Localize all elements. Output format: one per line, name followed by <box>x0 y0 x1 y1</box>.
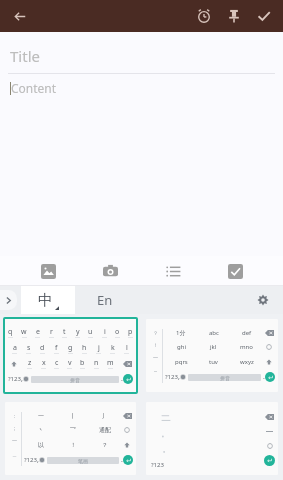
button[interactable]: ： <box>5 402 136 475</box>
staticText: ！ <box>153 342 158 348</box>
staticText: a <box>13 343 17 353</box>
staticText: 中 <box>38 291 53 310</box>
staticText: k <box>111 343 115 353</box>
staticText: ： <box>12 413 17 419</box>
staticText: n <box>94 358 99 368</box>
staticText: 一 <box>38 412 44 420</box>
staticText: u <box>88 327 93 337</box>
staticText: ～ <box>153 368 158 374</box>
staticText: mno <box>240 343 253 351</box>
staticText: d <box>40 343 45 353</box>
staticText: ?123 <box>165 373 178 381</box>
staticText: 1分 <box>176 329 186 337</box>
staticText: y <box>76 327 80 337</box>
button[interactable]: Content <box>10 80 273 96</box>
button[interactable]: ？ <box>146 319 278 392</box>
staticText: , <box>178 372 180 382</box>
button[interactable]: Checklist <box>221 257 249 285</box>
staticText: l <box>126 343 128 353</box>
staticText: Content <box>11 80 57 96</box>
staticText: ?123 <box>8 375 21 383</box>
button[interactable]: Expand <box>0 290 17 310</box>
staticText: — <box>153 354 159 361</box>
staticText: ?123 <box>24 456 37 464</box>
button[interactable]: Bulleted list <box>159 257 187 285</box>
staticText: ？ <box>102 441 108 449</box>
staticText: En <box>97 291 113 309</box>
staticText: 通配 <box>99 426 111 434</box>
staticText: tuv <box>209 358 218 366</box>
staticText: def <box>242 329 252 337</box>
staticText: 丿 <box>102 412 108 420</box>
staticText: b <box>80 358 85 368</box>
button[interactable]: Keyboard settings <box>251 288 275 312</box>
staticText: 拼音 <box>220 375 230 381</box>
staticText: Title <box>10 46 40 66</box>
staticText: q <box>8 327 13 337</box>
staticText: wxyz <box>240 358 254 366</box>
staticText: , <box>21 374 23 384</box>
staticText: e <box>36 327 40 337</box>
staticText: z <box>28 358 32 368</box>
button[interactable]: Back <box>4 0 36 32</box>
staticText: 笔画 <box>78 458 88 464</box>
staticText: m <box>107 358 114 368</box>
staticText: 拼音 <box>70 377 80 383</box>
button[interactable]: Take photo <box>96 257 124 285</box>
button[interactable]: Reminder <box>189 1 219 31</box>
staticText: abc <box>209 329 219 337</box>
staticText: ghi <box>177 343 186 351</box>
staticText: o <box>115 327 120 337</box>
staticText: j <box>98 343 100 353</box>
staticText: 丶 <box>38 426 44 434</box>
staticText: t <box>63 327 66 337</box>
staticText: ； <box>12 425 17 431</box>
staticText: . <box>121 455 123 465</box>
staticText: v <box>68 358 72 368</box>
button[interactable]: Done <box>249 1 279 31</box>
staticText: 以 <box>38 441 44 449</box>
staticText: pqrs <box>175 358 188 366</box>
staticText: f <box>55 343 58 353</box>
staticText: p <box>128 327 133 337</box>
staticText: ！ <box>70 441 76 449</box>
staticText: jkl <box>210 343 217 351</box>
staticText: x <box>42 358 46 368</box>
staticText: ＿ <box>12 451 17 457</box>
staticText: i <box>104 327 106 337</box>
button[interactable]: Title <box>10 46 273 66</box>
staticText: . <box>121 374 123 384</box>
staticText: h <box>82 343 87 353</box>
staticText: w <box>21 327 27 337</box>
staticText: 乛 <box>70 426 76 434</box>
staticText: c <box>55 358 59 368</box>
button[interactable]: q <box>5 319 136 392</box>
staticText: ?123 <box>151 461 164 469</box>
staticText: 丨 <box>70 412 76 420</box>
staticText: — <box>12 437 18 444</box>
staticText: ？ <box>153 330 158 336</box>
button[interactable]: Pin <box>219 1 249 31</box>
staticText: . <box>263 372 265 382</box>
staticText: s <box>27 343 31 353</box>
button[interactable]: 中 <box>21 286 75 314</box>
staticText: g <box>68 343 73 353</box>
staticText: , <box>37 455 39 465</box>
staticText: r <box>50 327 53 337</box>
button[interactable]: En <box>75 286 135 314</box>
button[interactable]: Add image <box>34 257 62 285</box>
button[interactable]: ?123 <box>146 402 278 475</box>
